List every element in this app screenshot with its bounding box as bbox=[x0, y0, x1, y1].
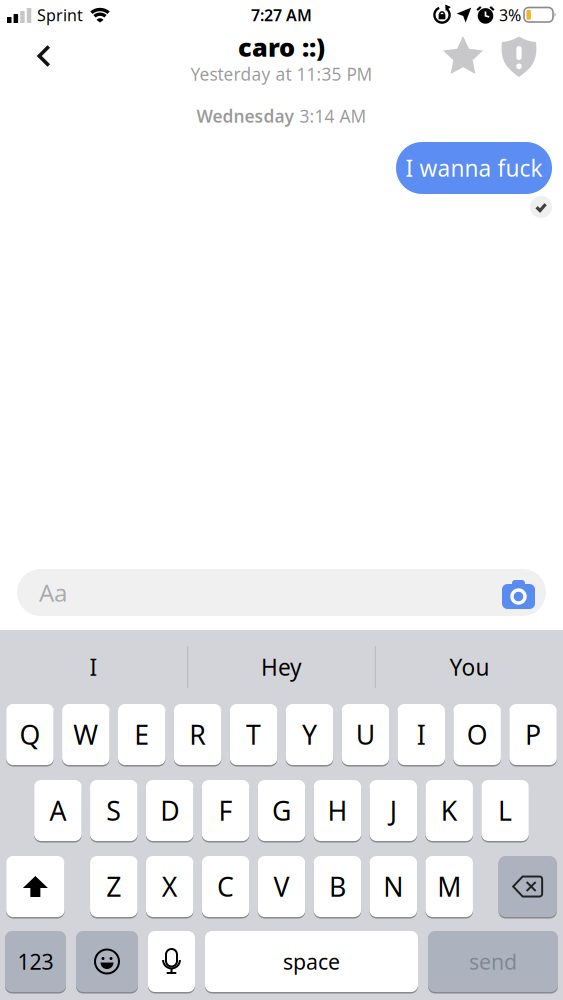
button[interactable] bbox=[501, 36, 536, 78]
button[interactable]: A bbox=[34, 780, 82, 841]
staticText: Y bbox=[302, 717, 317, 752]
staticText: W bbox=[73, 717, 98, 752]
staticText: I wanna fuck bbox=[405, 153, 542, 183]
staticText: H bbox=[327, 793, 347, 828]
staticText: caro ::) bbox=[238, 30, 325, 64]
staticText: 123 bbox=[17, 947, 53, 976]
staticText: I bbox=[417, 717, 426, 752]
button[interactable]: I bbox=[397, 704, 445, 765]
button[interactable]: R bbox=[174, 704, 221, 765]
button[interactable]: U bbox=[342, 704, 389, 765]
button[interactable]: B bbox=[314, 856, 361, 917]
button[interactable] bbox=[76, 931, 138, 992]
button[interactable]: Aa bbox=[17, 569, 546, 616]
staticText: V bbox=[273, 869, 289, 904]
staticText: Q bbox=[19, 717, 40, 752]
button[interactable]: T bbox=[230, 704, 277, 765]
staticText: O bbox=[467, 717, 488, 752]
staticText: C bbox=[217, 869, 234, 904]
staticText: F bbox=[219, 793, 233, 828]
button[interactable]: I bbox=[0, 630, 187, 704]
staticText: P bbox=[525, 717, 541, 752]
staticText: space bbox=[283, 947, 340, 976]
staticText: Z bbox=[106, 869, 121, 904]
button[interactable]: J bbox=[369, 780, 417, 841]
button[interactable]: W bbox=[62, 704, 110, 765]
staticText: I bbox=[90, 652, 98, 682]
button[interactable]: C bbox=[202, 856, 249, 917]
staticText: G bbox=[272, 793, 291, 828]
staticText: R bbox=[189, 717, 206, 752]
button[interactable]: L bbox=[481, 780, 529, 841]
button[interactable]: O bbox=[453, 704, 501, 765]
button[interactable]: H bbox=[314, 780, 361, 841]
button[interactable]: Y bbox=[286, 704, 333, 765]
button[interactable] bbox=[148, 931, 195, 992]
button[interactable] bbox=[6, 856, 64, 917]
staticText: Aa bbox=[39, 577, 67, 608]
button[interactable]: E bbox=[118, 704, 165, 765]
staticText: send bbox=[469, 947, 517, 976]
button[interactable] bbox=[37, 44, 51, 67]
button[interactable] bbox=[502, 578, 546, 607]
staticText: Sprint bbox=[37, 4, 83, 26]
staticText: L bbox=[498, 793, 512, 828]
button[interactable]: D bbox=[146, 780, 193, 841]
staticText: X bbox=[162, 869, 178, 904]
staticText: Yesterday at 11:35 PM bbox=[190, 62, 372, 85]
button[interactable]: N bbox=[370, 856, 417, 917]
button[interactable]: You bbox=[376, 630, 563, 704]
staticText: 3:14 AM bbox=[299, 104, 366, 127]
staticText: You bbox=[449, 652, 489, 682]
staticText: U bbox=[356, 717, 375, 752]
button[interactable] bbox=[498, 856, 557, 917]
staticText: J bbox=[390, 793, 397, 828]
button[interactable]: 123 bbox=[5, 931, 66, 992]
button[interactable]: Z bbox=[90, 856, 137, 917]
staticText: T bbox=[246, 717, 261, 752]
button[interactable] bbox=[441, 36, 485, 78]
button[interactable]: X bbox=[146, 856, 193, 917]
staticText: D bbox=[160, 793, 179, 828]
staticText: K bbox=[441, 793, 458, 828]
button[interactable]: M bbox=[425, 856, 473, 917]
button[interactable]: K bbox=[425, 780, 473, 841]
button[interactable]: G bbox=[258, 780, 305, 841]
button[interactable]: P bbox=[509, 704, 557, 765]
staticText: B bbox=[329, 869, 346, 904]
button[interactable]: space bbox=[205, 931, 418, 992]
staticText: S bbox=[106, 793, 121, 828]
button[interactable]: send bbox=[428, 931, 558, 992]
button[interactable]: Hey bbox=[188, 630, 375, 704]
button[interactable]: Q bbox=[6, 704, 54, 765]
button[interactable]: F bbox=[202, 780, 249, 841]
staticText: E bbox=[134, 717, 149, 752]
staticText: 7:27 AM bbox=[251, 4, 312, 26]
button[interactable]: S bbox=[90, 780, 138, 841]
staticText: M bbox=[437, 869, 461, 904]
staticText: Hey bbox=[261, 652, 302, 682]
button[interactable]: V bbox=[258, 856, 305, 917]
staticText: A bbox=[49, 793, 66, 828]
staticText: N bbox=[383, 869, 403, 904]
staticText: 3% bbox=[499, 4, 521, 26]
staticText: Wednesday bbox=[196, 104, 293, 127]
